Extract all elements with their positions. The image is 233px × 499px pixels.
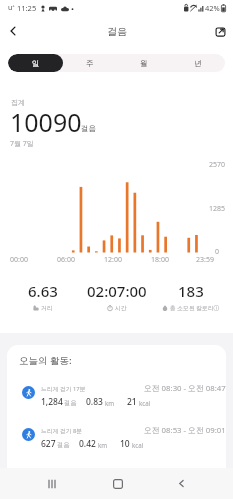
staticText: 0.83	[86, 396, 103, 408]
staticText: 오전 08:30 - 오전 08:47	[144, 383, 226, 394]
staticText: 0	[215, 247, 220, 257]
staticText: 걸음	[57, 441, 70, 449]
button[interactable]: Open externally	[207, 18, 233, 44]
staticText: 06:00	[53, 255, 79, 265]
staticText: 걸음	[107, 25, 127, 38]
staticText: kcal	[139, 399, 151, 407]
staticText: 627	[41, 438, 56, 450]
staticText: 총 소모된 칼로리ⓘ	[170, 304, 220, 312]
staticText: 6.63	[28, 281, 58, 301]
staticText: 183	[178, 281, 204, 301]
staticText: 주	[86, 59, 94, 68]
staticText: 느리게 걷기 8분	[41, 427, 83, 435]
staticText: 느리게 걷기 17분	[41, 385, 86, 393]
staticText: 02:07:00	[87, 281, 147, 301]
staticText: 오전 08:53 - 오전 09:01	[144, 425, 226, 436]
staticText: 12:00	[100, 255, 126, 265]
staticText: 2570	[209, 160, 226, 170]
button[interactable]: 월	[117, 54, 171, 72]
button[interactable]: Back	[0, 18, 26, 44]
staticText: 23:59	[192, 255, 218, 265]
staticText: 거리	[41, 304, 53, 311]
button[interactable]: 느리게 걷기 8분	[7, 427, 226, 455]
staticText: 걸음	[64, 399, 77, 407]
button[interactable]: Back	[167, 468, 195, 499]
staticText: km	[98, 441, 108, 449]
staticText: u⁺	[8, 3, 15, 13]
staticText: kcal	[132, 441, 144, 449]
staticText: 10090	[10, 105, 82, 139]
staticText: 오늘의 활동:	[19, 354, 72, 367]
staticText: 00:00	[6, 255, 32, 265]
staticText: 0.42	[79, 438, 96, 450]
staticText: 1,284	[41, 396, 63, 408]
button[interactable]: 느리게 걷기 17분	[7, 385, 226, 413]
staticText: km	[105, 399, 115, 407]
staticText: 월	[140, 59, 148, 68]
button[interactable]: Home	[104, 468, 132, 499]
staticText: 21	[127, 396, 137, 408]
button[interactable]: Recent apps	[38, 468, 66, 499]
button[interactable]: 년	[171, 54, 225, 72]
staticText: 7월 7일	[10, 139, 34, 149]
staticText: 18:00	[147, 255, 173, 265]
button[interactable]: 일	[8, 54, 63, 72]
staticText: 10	[120, 438, 130, 450]
staticText: 걸음	[81, 124, 96, 133]
staticText: 11:25	[17, 3, 37, 13]
button[interactable]: 주	[63, 54, 117, 72]
staticText: 42%	[205, 3, 220, 13]
staticText: 일	[32, 59, 40, 68]
staticText: 집계	[11, 98, 25, 107]
staticText: 시간	[115, 304, 127, 311]
staticText: 1285	[209, 204, 226, 214]
staticText: 년	[194, 59, 202, 68]
